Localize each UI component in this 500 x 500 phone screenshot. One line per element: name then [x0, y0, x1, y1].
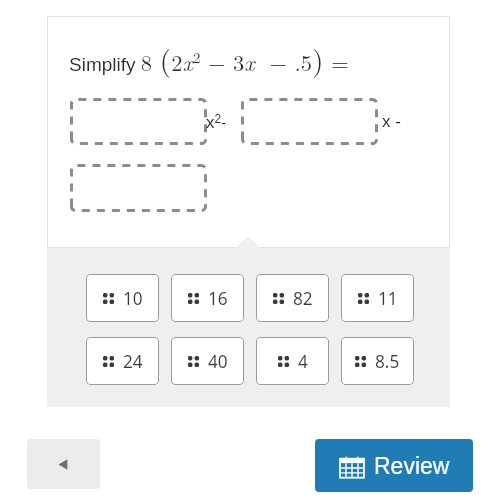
staticText: 11 [378, 287, 398, 310]
staticText: x2- [206, 112, 227, 132]
staticText: 16 [208, 287, 228, 310]
button[interactable]: Previous [27, 439, 100, 489]
button[interactable] [241, 98, 378, 145]
staticText: 4 [298, 350, 308, 373]
staticText: 40 [208, 350, 228, 373]
button[interactable] [70, 164, 207, 212]
staticText: 24 [123, 350, 143, 373]
button[interactable]: Review [315, 439, 473, 492]
staticText: Review [374, 453, 450, 479]
staticText: x - [382, 112, 401, 131]
staticText: Simplify 8 (2x2 − 3x − .5) = [69, 37, 349, 80]
staticText: 8.5 [375, 350, 400, 373]
staticText: 10 [123, 287, 143, 310]
staticText: 82 [293, 287, 313, 310]
button[interactable] [70, 98, 207, 145]
